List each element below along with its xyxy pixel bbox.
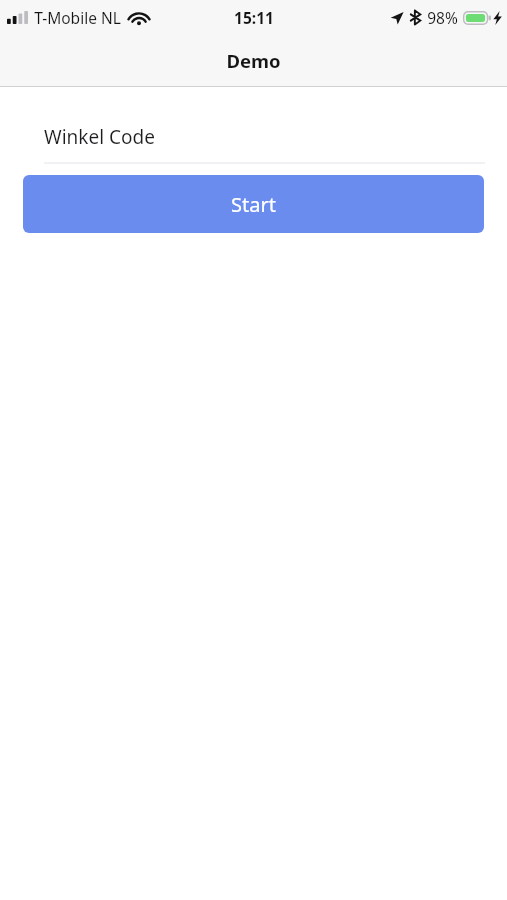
staticText: T-Mobile NL: [34, 7, 121, 28]
staticText: Start: [231, 191, 276, 218]
button[interactable]: Start: [23, 175, 484, 233]
staticText: 15:11: [234, 7, 274, 28]
staticText: Demo: [226, 48, 281, 73]
staticText: Winkel Code: [44, 124, 155, 150]
staticText: 98%: [427, 7, 458, 28]
